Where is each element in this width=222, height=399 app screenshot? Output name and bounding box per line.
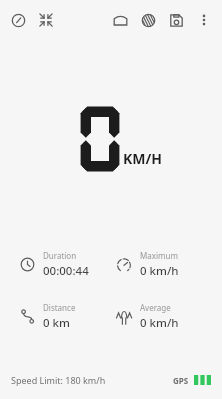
button[interactable]: Maximum bbox=[116, 250, 212, 279]
staticText: 0 km bbox=[43, 315, 70, 331]
staticText: Duration bbox=[43, 250, 77, 261]
staticText: 0 km/h bbox=[140, 263, 179, 279]
button[interactable]: Disable speed limit bbox=[134, 6, 162, 34]
button[interactable]: Exit fullscreen bbox=[32, 6, 60, 34]
button[interactable]: Speed limit bbox=[106, 6, 134, 34]
button[interactable]: Duration bbox=[20, 250, 116, 279]
button[interactable]: Save trip bbox=[162, 6, 190, 34]
staticText: GPS bbox=[173, 375, 189, 386]
staticText: KM/H bbox=[123, 149, 163, 168]
staticText: Distance bbox=[43, 302, 76, 313]
staticText: Maximum bbox=[140, 250, 178, 261]
button[interactable]: More options bbox=[190, 6, 218, 34]
staticText: 00:00:44 bbox=[43, 263, 89, 279]
button[interactable]: Average bbox=[116, 302, 212, 331]
button[interactable]: Distance bbox=[20, 302, 116, 331]
staticText: Average bbox=[140, 302, 171, 313]
staticText: 0 km/h bbox=[140, 315, 179, 331]
staticText: Speed Limit: 180 km/h bbox=[11, 374, 106, 386]
button[interactable]: Speedometer mode bbox=[4, 6, 32, 34]
